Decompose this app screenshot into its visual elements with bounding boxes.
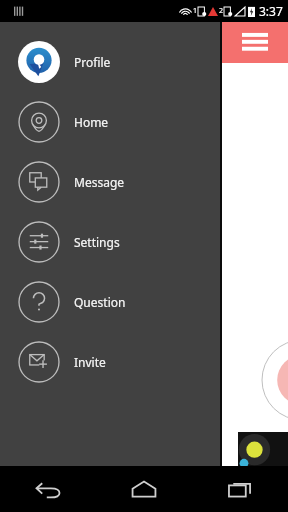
button[interactable]: Home (96, 466, 192, 512)
staticText: 2 (219, 6, 224, 16)
button[interactable]: Home (0, 92, 220, 152)
button[interactable]: Recent apps (192, 466, 288, 512)
staticText: Home (74, 114, 109, 130)
button[interactable]: Back (0, 466, 96, 512)
staticText: Message (74, 174, 125, 190)
staticText: Invite (74, 354, 106, 370)
button[interactable]: Settings (0, 212, 220, 272)
staticText: 3:37 (259, 3, 283, 19)
button[interactable] (238, 432, 288, 466)
staticText: Profile (74, 54, 111, 70)
staticText: Settings (74, 234, 120, 250)
button[interactable]: Message (0, 152, 220, 212)
staticText: 1 (193, 6, 198, 16)
staticText: Question (74, 294, 126, 310)
button[interactable]: Profile (0, 32, 220, 92)
button[interactable]: Invite (0, 332, 220, 392)
button[interactable]: Open navigation drawer (242, 32, 268, 54)
button[interactable]: Question (0, 272, 220, 332)
